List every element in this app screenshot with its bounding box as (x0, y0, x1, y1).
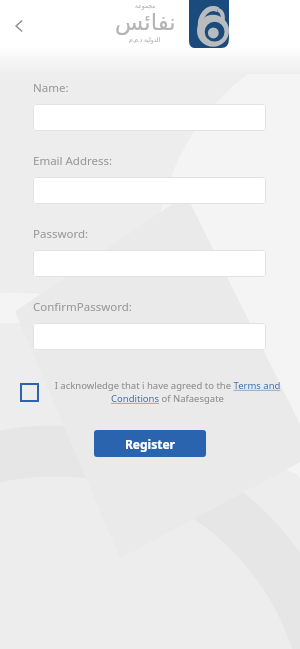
staticText: Name: (33, 80, 69, 96)
button[interactable]: Acknowledge terms (20, 379, 286, 405)
other: Acknowledge terms (20, 383, 39, 402)
staticText: Register (125, 436, 175, 452)
button[interactable]: Back (0, 6, 40, 46)
staticText: Email Address: (33, 153, 113, 169)
staticText: I acknowledge that i have agreed to the … (49, 379, 286, 405)
staticText: Password: (33, 226, 89, 242)
button[interactable]: Register (94, 430, 206, 457)
button[interactable] (33, 250, 266, 277)
staticText: نفائس (115, 9, 176, 36)
staticText: الدولية ذ.م.م (129, 36, 161, 44)
staticText: ConfirmPassword: (33, 299, 132, 315)
staticText: مجموعة (135, 2, 156, 9)
button[interactable] (33, 104, 266, 131)
button[interactable] (33, 177, 266, 204)
button[interactable] (33, 323, 266, 350)
